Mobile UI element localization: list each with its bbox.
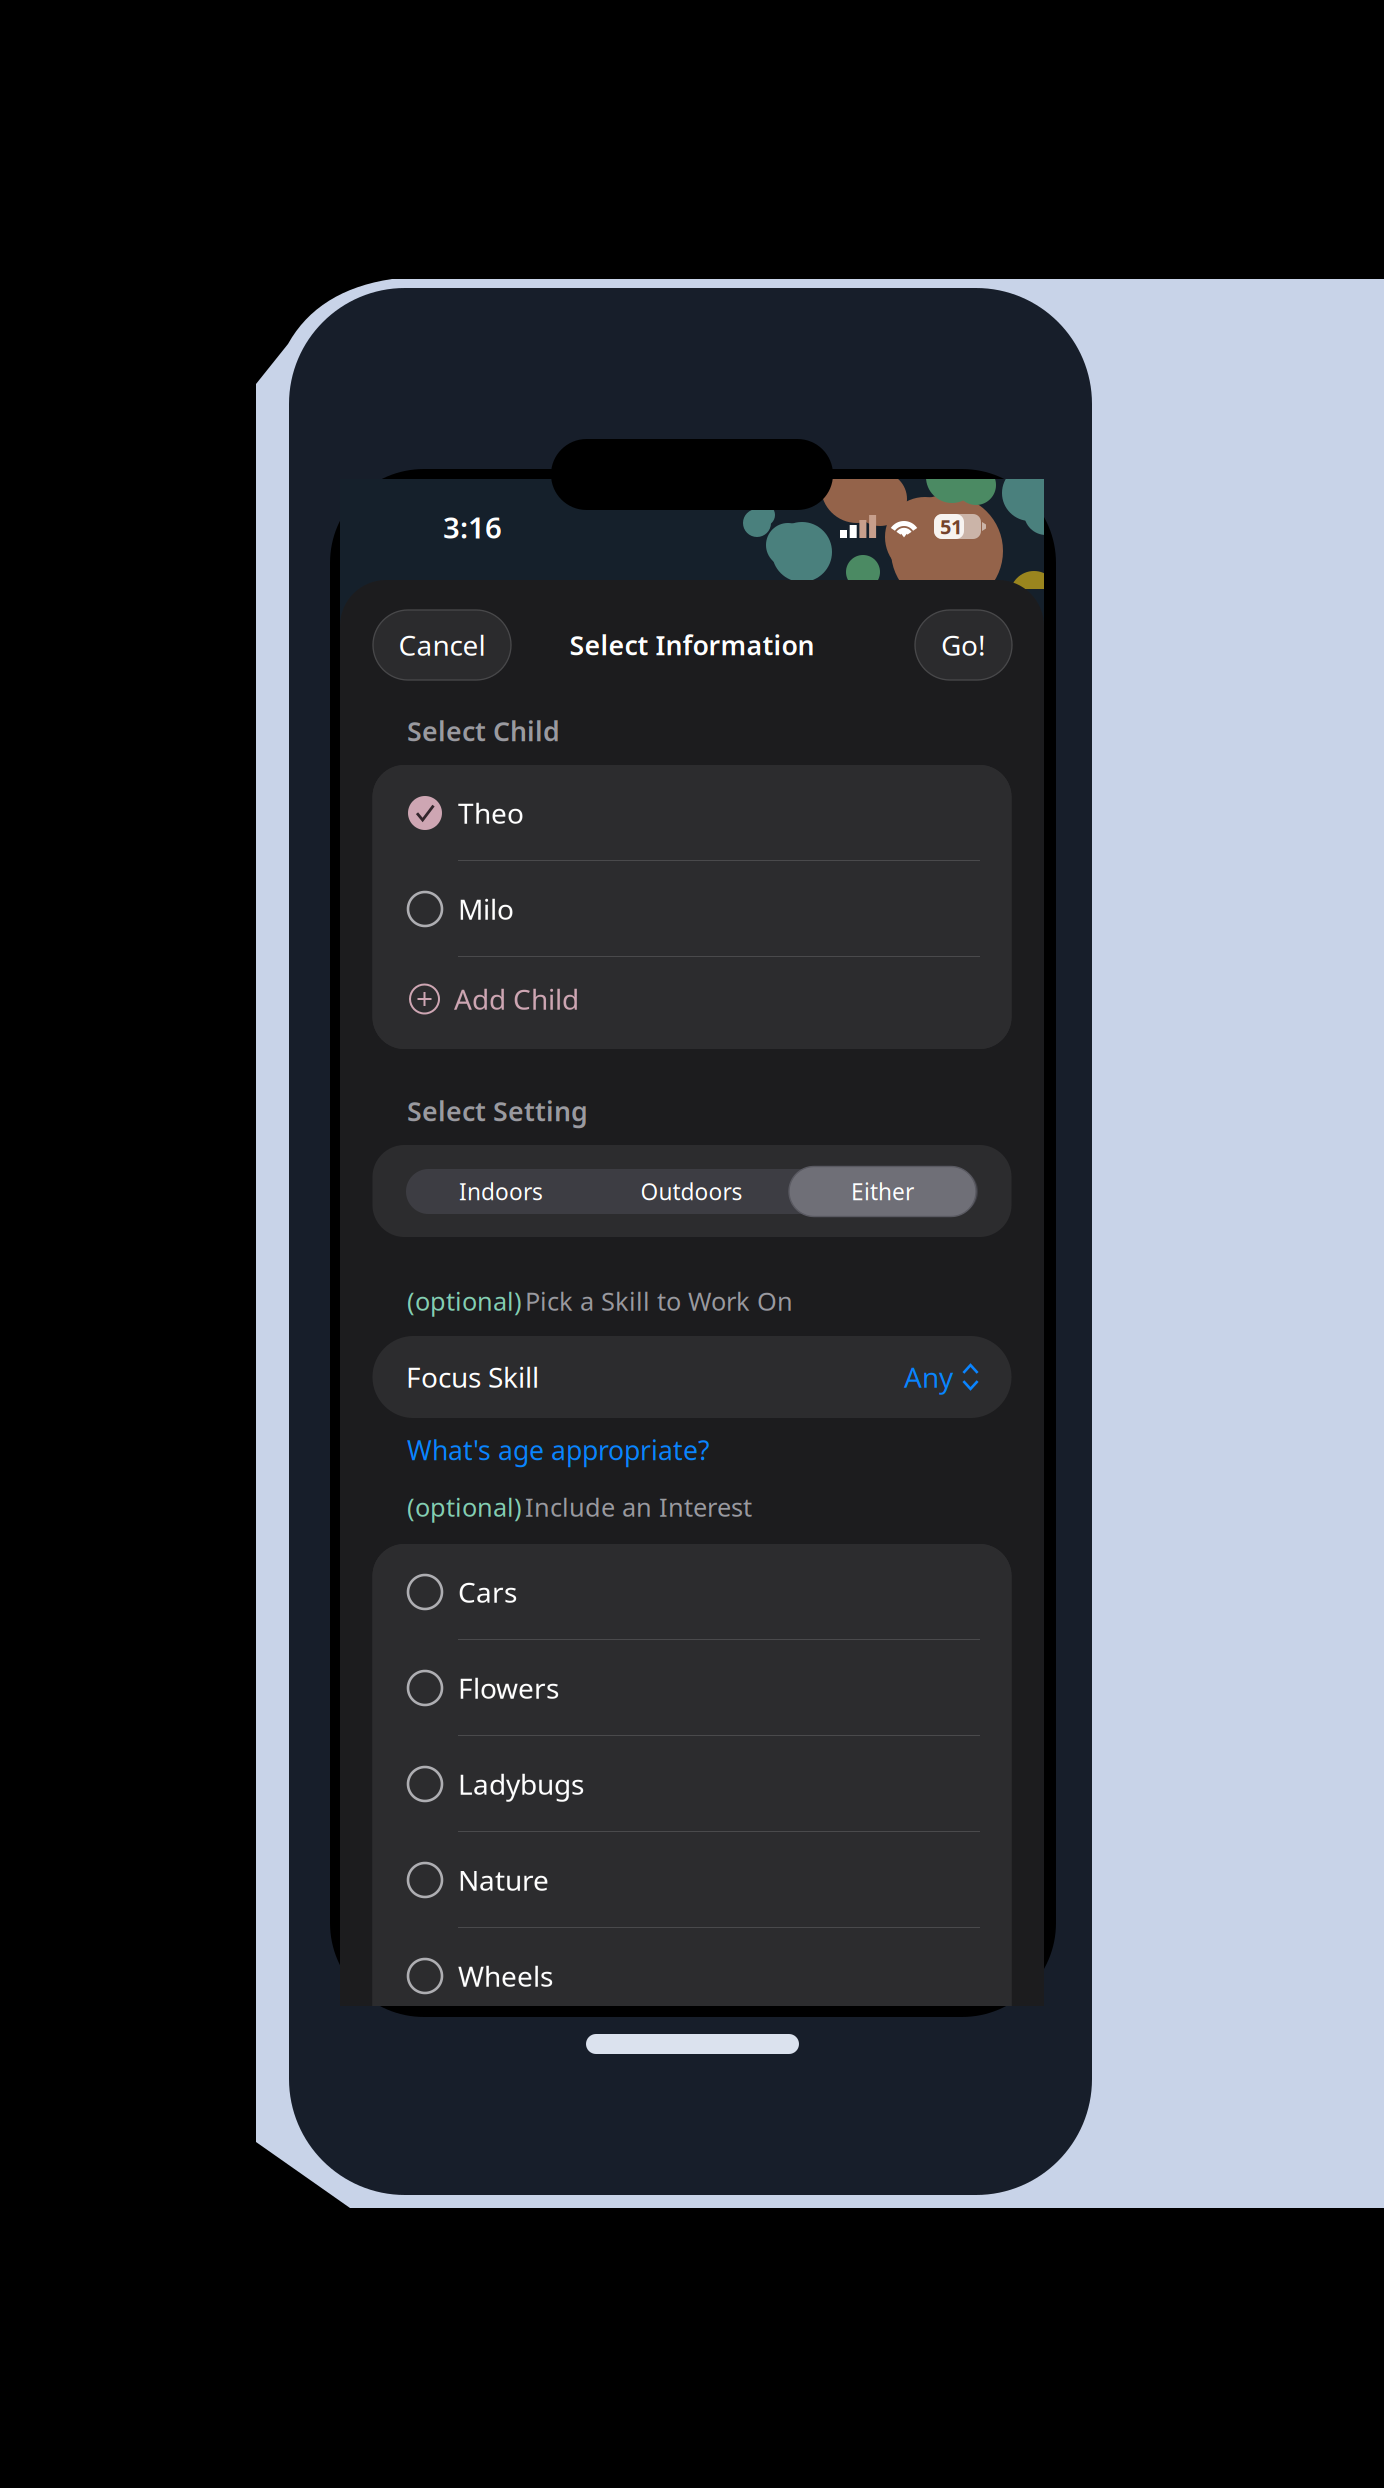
staticText: Ladybugs	[458, 1765, 584, 1803]
button[interactable]: Focus Skill	[372, 1336, 1011, 1418]
staticText: Pick a Skill to Work On	[525, 1284, 793, 1318]
staticText: Include an Interest	[525, 1490, 752, 1524]
staticText: Cancel	[398, 626, 485, 664]
staticText: Flowers	[458, 1669, 559, 1707]
staticText: Cars	[458, 1573, 517, 1611]
button[interactable]: Ladybugs	[372, 1736, 1011, 1832]
staticText: Indoors	[459, 1176, 543, 1206]
button[interactable]: What's age appropriate?	[407, 1435, 737, 1465]
staticText: Select Setting	[407, 1093, 588, 1129]
button[interactable]: Cancel	[373, 610, 511, 680]
staticText: Theo	[458, 794, 524, 832]
staticText: 3:16	[443, 507, 502, 546]
button[interactable]: Add Child	[372, 957, 1011, 1049]
staticText: Select Information	[569, 627, 814, 663]
button[interactable]: Nature	[372, 1832, 1011, 1928]
staticText: 51	[940, 513, 962, 540]
staticText: Milo	[458, 890, 514, 928]
button[interactable]: Flowers	[372, 1640, 1011, 1736]
staticText: Wheels	[458, 1957, 553, 1995]
staticText: (optional)	[407, 1284, 522, 1318]
button[interactable]: Milo	[372, 861, 1011, 957]
button[interactable]: Go!	[915, 610, 1012, 680]
staticText: What's age appropriate?	[407, 1432, 710, 1468]
staticText: Outdoors	[640, 1176, 742, 1206]
button[interactable]: Either	[787, 1169, 978, 1214]
staticText: Go!	[941, 626, 986, 664]
staticText: Focus Skill	[406, 1358, 539, 1396]
button[interactable]: Theo	[372, 765, 1011, 861]
staticText: Nature	[458, 1861, 549, 1899]
staticText: Any	[904, 1358, 953, 1396]
button[interactable]: Wheels	[372, 1928, 1011, 2024]
staticText: (optional)	[407, 1490, 522, 1524]
button[interactable]: Cars	[372, 1544, 1011, 1640]
staticText: Add Child	[454, 980, 579, 1018]
staticText: Either	[851, 1176, 914, 1206]
button[interactable]: Outdoors	[596, 1169, 787, 1214]
staticText: Select Child	[407, 713, 560, 749]
button[interactable]: Indoors	[406, 1169, 596, 1214]
